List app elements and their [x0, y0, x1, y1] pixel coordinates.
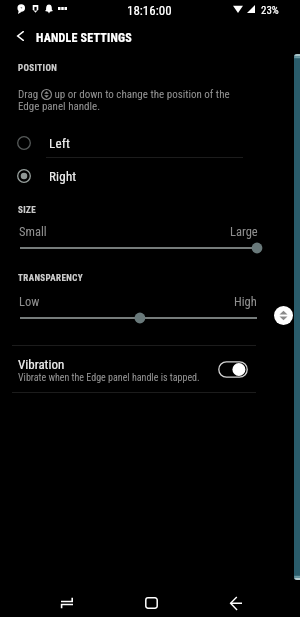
staticText: TRANSPARENCY [18, 273, 84, 284]
staticText: POSITION [18, 63, 58, 74]
button[interactable]: Transparency slider [14, 309, 263, 327]
staticText: Drag [18, 88, 41, 101]
staticText: HANDLE SETTINGS [36, 31, 132, 45]
staticText: SIZE [18, 205, 37, 216]
staticText: Left [49, 136, 71, 151]
button[interactable]: Navigate up [6, 22, 34, 50]
button[interactable]: Recent apps [48, 584, 86, 617]
staticText: Vibrate when the Edge panel handle is ta… [18, 372, 200, 384]
button[interactable]: Right [0, 161, 300, 190]
staticText: Vibration [18, 357, 65, 372]
staticText: Low [19, 294, 40, 309]
staticText: 18:16:00 [127, 3, 172, 18]
button[interactable]: Left [0, 128, 300, 157]
staticText: Large [230, 224, 258, 239]
staticText: up or down to change the position of the [52, 88, 230, 101]
button[interactable]: Move handle up or down [274, 306, 293, 325]
staticText: High [234, 294, 257, 309]
staticText: 23% [261, 4, 279, 17]
staticText: Right [49, 169, 77, 184]
button[interactable]: Vibration on [218, 361, 248, 378]
button[interactable]: Back [216, 584, 254, 617]
button[interactable]: Vibration [0, 346, 300, 392]
staticText: Small [19, 224, 47, 239]
staticText: Edge panel handle. [18, 100, 101, 113]
button[interactable]: Size slider [14, 239, 263, 257]
button[interactable]: Home [132, 584, 170, 617]
